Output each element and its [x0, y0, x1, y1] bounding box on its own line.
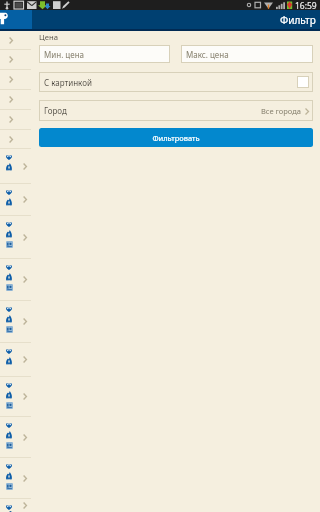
button[interactable]: List item 11: [0, 301, 31, 342]
button[interactable]: Мин. цена: [39, 45, 170, 63]
button[interactable]: List item 3: [0, 70, 31, 89]
button[interactable]: Open navigation: [0, 10, 32, 29]
button[interactable]: List item 14: [0, 417, 31, 457]
staticText: Фильтр: [280, 13, 316, 27]
button[interactable]: List item 9: [0, 216, 31, 258]
button[interactable]: Город: [39, 100, 313, 121]
staticText: 16:59: [295, 0, 317, 10]
staticText: Макс. цена: [186, 49, 229, 60]
staticText: Цена: [39, 32, 58, 42]
button[interactable]: List item 7: [0, 149, 31, 183]
button[interactable]: List item 15: [0, 458, 31, 498]
button[interactable]: List item 8: [0, 184, 31, 215]
button[interactable]: List item 10: [0, 259, 31, 300]
button[interactable]: List item 12: [0, 343, 31, 376]
button[interactable]: List item 5: [0, 110, 31, 129]
staticText: С картинкой: [44, 77, 92, 88]
button[interactable]: List item 6: [0, 130, 31, 148]
staticText: Город: [44, 105, 67, 116]
button[interactable]: С картинкой: [39, 72, 313, 92]
staticText: Мин. цена: [44, 49, 85, 60]
staticText: Фильтровать: [152, 133, 200, 143]
button[interactable]: Макс. цена: [181, 45, 313, 63]
button[interactable]: List item 13: [0, 377, 31, 416]
staticText: Все города: [261, 106, 301, 116]
button[interactable]: List item 2: [0, 50, 31, 69]
button[interactable]: List item 16: [0, 499, 31, 512]
button[interactable]: List item 1: [0, 31, 31, 49]
button[interactable]: Фильтровать: [39, 128, 313, 147]
button[interactable]: List item 4: [0, 90, 31, 109]
